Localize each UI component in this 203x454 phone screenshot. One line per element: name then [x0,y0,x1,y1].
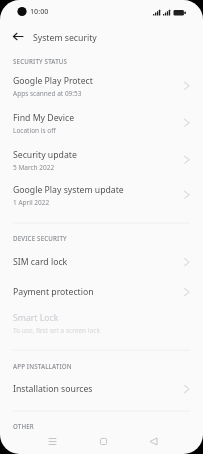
button[interactable]: Find My Device [0,106,203,143]
button[interactable]: Home [91,429,115,453]
staticText: 5 March 2022 [13,163,55,172]
staticText: 1 April 2022 [13,198,50,207]
staticText: Payment protection [13,286,94,298]
button[interactable]: Back [5,24,30,49]
button[interactable]: Payment protection [0,280,203,310]
button[interactable]: Back [141,429,165,453]
staticText: Installation sources [13,383,93,395]
staticText: Smart Lock [13,312,59,324]
button[interactable]: SIM card lock [0,250,203,280]
button[interactable]: Installation sources [0,377,203,407]
staticText: To use, first set a screen lock [13,326,100,335]
staticText: 10:00 [30,6,49,16]
staticText: Security update [13,149,77,161]
staticText: System security [33,32,97,44]
staticText: APP INSTALLATION [13,362,72,370]
staticText: SECURITY STATUS [13,57,68,65]
button[interactable]: Google Play system update [0,178,203,215]
staticText: Google Play Protect [13,75,93,87]
staticText: SIM card lock [13,256,68,268]
staticText: Apps scanned at 09:53 [13,89,82,98]
staticText: DEVICE SECURITY [13,234,67,242]
button[interactable]: Recent apps [40,429,64,453]
staticText: Location is off [13,126,56,135]
staticText: OTHER [13,422,34,430]
button[interactable]: Security update [0,143,203,180]
staticText: Google Play system update [13,184,124,196]
staticText: Find My Device [13,112,75,124]
button[interactable]: Google Play Protect [0,69,203,106]
